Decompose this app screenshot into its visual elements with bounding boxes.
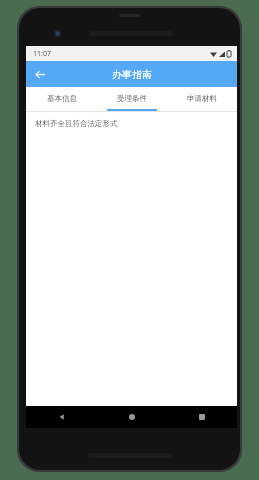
staticText: 办事指南: [112, 68, 152, 81]
button[interactable]: 基本信息: [26, 87, 97, 109]
button[interactable]: Recent apps: [167, 406, 237, 428]
button[interactable]: Back: [26, 406, 97, 428]
button[interactable]: 申请材料: [167, 87, 237, 109]
button[interactable]: 受理条件: [97, 87, 167, 109]
button[interactable]: Home: [97, 406, 167, 428]
staticText: 11:07: [33, 49, 51, 59]
button[interactable]: Back: [29, 63, 51, 85]
staticText: 基本信息: [47, 94, 77, 103]
staticText: 受理条件: [117, 94, 147, 103]
staticText: 材料齐全且符合法定形式: [35, 119, 118, 128]
staticText: 申请材料: [187, 94, 217, 103]
